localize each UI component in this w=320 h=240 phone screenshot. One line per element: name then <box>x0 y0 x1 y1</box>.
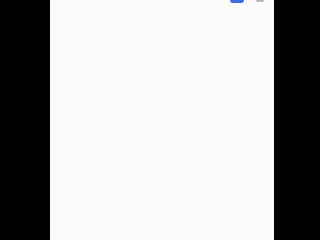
button[interactable] <box>256 0 264 2</box>
button[interactable] <box>230 0 244 3</box>
